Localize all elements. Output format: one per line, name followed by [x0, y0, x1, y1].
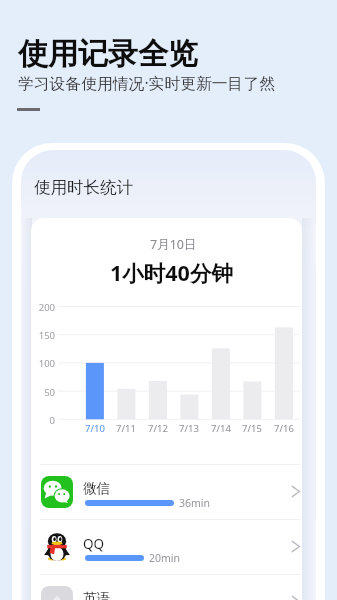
staticText: 学习设备使用情况·实时更新一目了然: [18, 72, 275, 94]
staticText: 7月10日: [150, 236, 197, 253]
staticText: 36min: [179, 496, 211, 510]
staticText: 100: [31, 357, 55, 370]
staticText: 7/12: [142, 422, 174, 435]
staticText: 使用时长统计: [34, 177, 133, 198]
staticText: 1小时40分钟: [110, 258, 233, 287]
button[interactable]: QQ: [31, 520, 302, 574]
staticText: QQ: [83, 535, 105, 553]
staticText: 7/10: [79, 422, 111, 435]
staticText: 7/14: [205, 422, 237, 435]
staticText: 200: [31, 301, 55, 314]
staticText: 20min: [149, 551, 181, 565]
staticText: 7/13: [173, 422, 205, 435]
staticText: 微信: [83, 480, 110, 497]
staticText: 7/11: [110, 422, 142, 435]
other: Open details: [290, 595, 302, 600]
button[interactable]: 英语: [31, 575, 302, 600]
staticText: 英语: [83, 590, 110, 600]
staticText: 使用记录全览: [18, 35, 198, 73]
staticText: 0: [31, 414, 55, 427]
staticText: 50: [31, 386, 55, 399]
other: Open details: [290, 485, 302, 498]
staticText: 150: [31, 329, 55, 342]
button[interactable]: 微信: [31, 465, 302, 519]
other: Open details: [290, 540, 302, 553]
staticText: 7/15: [236, 422, 268, 435]
staticText: 7/16: [268, 422, 300, 435]
